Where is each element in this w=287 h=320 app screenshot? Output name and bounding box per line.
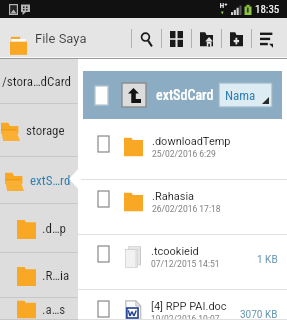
- button[interactable]: Grid view: [162, 18, 191, 59]
- button[interactable]: .R…ia: [0, 253, 78, 298]
- button[interactable]: File Saya: [0, 18, 91, 59]
- button[interactable]: Select item: [78, 125, 287, 180]
- button[interactable]: Home folder: [192, 18, 221, 59]
- button[interactable]: Select item: [78, 290, 287, 320]
- staticText: Nama: [225, 88, 256, 103]
- staticText: extS…rd: [30, 173, 71, 188]
- button[interactable]: storage: [0, 104, 78, 157]
- staticText: /stora…dCard: [2, 74, 71, 89]
- button[interactable]: Nama: [219, 83, 272, 107]
- button[interactable]: .d…p: [0, 204, 78, 253]
- button[interactable]: Select item: [98, 191, 109, 207]
- staticText: [4] RPP PAI.doc: [151, 300, 227, 313]
- button[interactable]: Select item: [78, 180, 287, 235]
- staticText: .tcookieid: [151, 245, 199, 258]
- staticText: File Saya: [35, 31, 87, 46]
- button[interactable]: .a…s: [0, 298, 78, 320]
- button[interactable]: Up one level: [122, 83, 146, 107]
- staticText: 3070 KB: [240, 309, 278, 320]
- button[interactable]: Select all: [95, 86, 108, 105]
- button[interactable]: Select item: [78, 235, 287, 290]
- button[interactable]: /stora…dCard: [0, 59, 78, 104]
- staticText: .Rahasia: [152, 190, 195, 203]
- button[interactable]: Sort: [252, 18, 281, 59]
- button[interactable]: Select item: [98, 301, 109, 317]
- staticText: 19/02/2016 10:07: [151, 314, 220, 320]
- staticText: 1 KB: [257, 254, 278, 266]
- staticText: .d…p: [42, 221, 66, 236]
- staticText: .a…s: [42, 302, 66, 317]
- button[interactable]: Select item: [98, 136, 109, 152]
- button[interactable]: extS…rd: [0, 157, 78, 204]
- button[interactable]: Search: [132, 18, 161, 59]
- staticText: extSdCard: [156, 87, 214, 103]
- button[interactable]: Select item: [98, 246, 109, 262]
- staticText: storage: [26, 123, 65, 138]
- staticText: 07/12/2015 14:51: [151, 259, 220, 269]
- staticText: .downloadTemp: [152, 135, 231, 148]
- staticText: 25/02/2016 6:29: [152, 149, 216, 159]
- staticText: 18:35: [255, 3, 280, 16]
- button[interactable]: New folder: [222, 18, 251, 59]
- staticText: .R…ia: [42, 268, 70, 283]
- staticText: 26/02/2016 17:18: [152, 204, 221, 214]
